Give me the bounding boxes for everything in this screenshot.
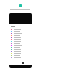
button[interactable] bbox=[9, 50, 32, 52]
button[interactable]: Logo bbox=[19, 4, 22, 7]
button[interactable] bbox=[9, 30, 32, 32]
button[interactable] bbox=[9, 38, 32, 40]
button[interactable] bbox=[9, 36, 32, 38]
button[interactable] bbox=[9, 44, 32, 46]
button[interactable] bbox=[9, 52, 32, 54]
button[interactable] bbox=[9, 56, 32, 58]
button[interactable] bbox=[9, 54, 32, 56]
button[interactable] bbox=[9, 42, 32, 44]
button[interactable] bbox=[9, 34, 32, 36]
button[interactable] bbox=[9, 48, 32, 50]
button[interactable] bbox=[9, 40, 32, 42]
button[interactable] bbox=[9, 28, 32, 30]
button[interactable] bbox=[9, 32, 32, 34]
button[interactable] bbox=[9, 46, 32, 48]
